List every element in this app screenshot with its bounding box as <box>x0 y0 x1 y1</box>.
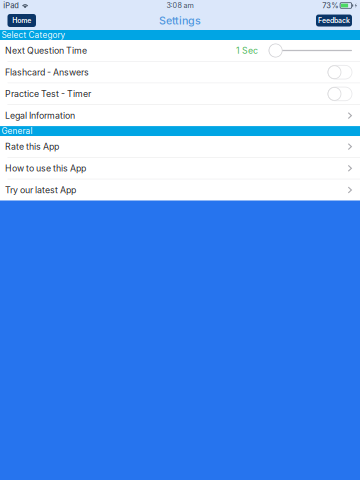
button[interactable]: Feedback <box>316 14 352 26</box>
button[interactable]: Practice Test - Timer <box>0 83 360 104</box>
staticText: Flashcard - Answers <box>5 67 89 77</box>
staticText: Next Question Time <box>5 45 87 56</box>
staticText: General <box>1 126 32 136</box>
staticText: Home <box>12 16 31 25</box>
button[interactable]: How to use this App <box>0 158 360 179</box>
staticText: Legal Information <box>5 110 75 121</box>
button[interactable]: Next Question Time <box>0 40 360 61</box>
staticText: iPad <box>3 1 19 10</box>
staticText: How to use this App <box>5 163 86 174</box>
staticText: Select Category <box>1 30 65 40</box>
staticText: 1 Sec <box>236 45 258 56</box>
staticText: 3:08 am <box>166 1 193 10</box>
button[interactable]: Rate this App <box>0 136 360 157</box>
staticText: 73% <box>322 1 338 10</box>
staticText: Settings <box>159 14 201 27</box>
staticText: Feedback <box>318 16 350 25</box>
staticText: Try our latest App <box>5 185 76 195</box>
staticText: Practice Test - Timer <box>5 89 91 99</box>
button[interactable]: Home <box>7 14 36 27</box>
staticText: Rate this App <box>5 141 59 152</box>
button[interactable]: Flashcard - Answers <box>0 62 360 83</box>
button[interactable]: Try our latest App <box>0 179 360 200</box>
button[interactable]: Legal Information <box>0 105 360 126</box>
